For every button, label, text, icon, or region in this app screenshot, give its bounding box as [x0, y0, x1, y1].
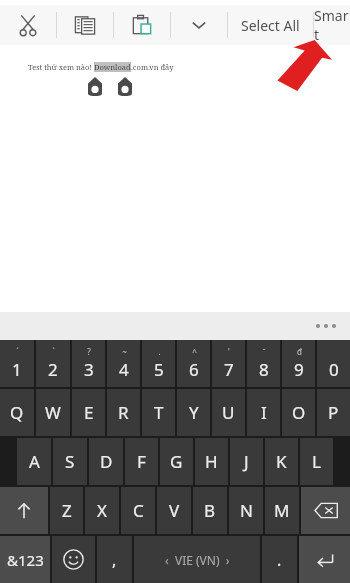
staticText: 5 [154, 358, 164, 381]
staticText: ~ [122, 346, 127, 357]
button[interactable]: , [97, 536, 132, 583]
staticText: Y [189, 401, 199, 424]
button[interactable]: F [125, 438, 158, 485]
button[interactable]: Y [177, 389, 210, 436]
button[interactable]: D [89, 438, 123, 485]
staticText: R [118, 401, 129, 424]
staticText: 9 [294, 358, 304, 381]
staticText: V [169, 499, 180, 522]
button[interactable]: Paste [114, 5, 170, 45]
staticText: ` [52, 346, 55, 357]
staticText: Select All [241, 16, 300, 35]
button[interactable]: X [85, 487, 119, 534]
staticText: ‹ VIE (VN) › [165, 552, 230, 568]
button[interactable]: R [107, 389, 140, 436]
button[interactable]: Space [134, 536, 260, 583]
button[interactable]: T [142, 389, 175, 436]
button[interactable]: Z [50, 487, 83, 534]
staticText: A [29, 450, 40, 473]
button[interactable]: B [193, 487, 227, 534]
staticText: E [84, 401, 94, 424]
button[interactable]: ´ [0, 340, 34, 387]
button[interactable]: . [142, 340, 175, 387]
button[interactable]: Smart [314, 5, 350, 45]
staticText: 0 [329, 358, 339, 381]
staticText: K [276, 450, 287, 473]
staticText: . [277, 549, 282, 571]
staticText: U [222, 401, 235, 424]
button[interactable]: P [317, 389, 350, 436]
staticText: T [154, 401, 164, 424]
button[interactable]: O [282, 389, 315, 436]
button[interactable]: H [195, 438, 228, 485]
staticText: L [312, 450, 321, 473]
button[interactable]: Cut [0, 5, 56, 45]
staticText: W [45, 401, 61, 424]
button[interactable]: Copy [57, 5, 113, 45]
staticText: , [112, 549, 117, 571]
staticText: D [100, 450, 113, 473]
staticText: O [292, 401, 306, 424]
button[interactable]: S [53, 438, 87, 485]
button[interactable]: G [160, 438, 193, 485]
button[interactable]: L [300, 438, 333, 485]
staticText: 2 [48, 358, 58, 381]
button[interactable]: C [121, 487, 155, 534]
staticText: ? [87, 346, 91, 357]
staticText: G [170, 450, 183, 473]
staticText: N [240, 499, 253, 522]
staticText: P [328, 401, 339, 424]
button[interactable]: ? [72, 340, 105, 387]
button[interactable]: Enter [299, 536, 350, 583]
button[interactable]: U [212, 389, 245, 436]
button[interactable]: N [229, 487, 263, 534]
staticText: 7 [224, 358, 234, 381]
staticText: C [133, 499, 144, 522]
button[interactable]: J [230, 438, 263, 485]
staticText: 8 [259, 358, 269, 381]
staticText: Q [10, 401, 24, 424]
button[interactable]: E [72, 389, 105, 436]
button[interactable]: V [157, 487, 191, 534]
button[interactable]: More [314, 324, 338, 328]
staticText: S [65, 450, 75, 473]
staticText: 4 [119, 358, 129, 381]
staticText: 6 [189, 358, 199, 381]
button[interactable]: Backspace [301, 487, 350, 534]
staticText: &123 [7, 550, 44, 570]
staticText: đ [297, 346, 302, 357]
staticText: Download [94, 62, 131, 72]
staticText: F [137, 450, 146, 473]
button[interactable]: I [247, 389, 280, 436]
button[interactable]: . [262, 536, 297, 583]
staticText: ' [228, 346, 230, 357]
staticText: 3 [84, 358, 94, 381]
button[interactable]: ' [212, 340, 245, 387]
button[interactable]: ` [36, 340, 70, 387]
button[interactable]: ~ [107, 340, 140, 387]
button[interactable]: Select All [228, 5, 313, 45]
button[interactable]: K [265, 438, 298, 485]
button[interactable]: 0 [317, 340, 350, 387]
staticText: Smart [314, 6, 350, 44]
button[interactable]: A [17, 438, 51, 485]
button[interactable]: Shift [0, 487, 48, 534]
staticText: B [204, 499, 216, 522]
staticText: I [261, 401, 267, 424]
button[interactable]: More options [171, 5, 227, 45]
staticText: 1 [12, 358, 22, 381]
staticText: ˘ [262, 346, 266, 357]
staticText: H [205, 450, 218, 473]
button[interactable]: ˘ [247, 340, 280, 387]
button[interactable]: Emoji [52, 536, 95, 583]
button[interactable]: W [36, 389, 70, 436]
button[interactable]: &123 [0, 536, 50, 583]
staticText: J [244, 450, 249, 473]
staticText: ^ [192, 346, 197, 357]
button[interactable]: ^ [177, 340, 210, 387]
button[interactable]: M [265, 487, 299, 534]
button[interactable]: Q [0, 389, 34, 436]
staticText: M [274, 499, 290, 522]
staticText: .com.vn đây [131, 62, 174, 72]
button[interactable]: đ [282, 340, 315, 387]
